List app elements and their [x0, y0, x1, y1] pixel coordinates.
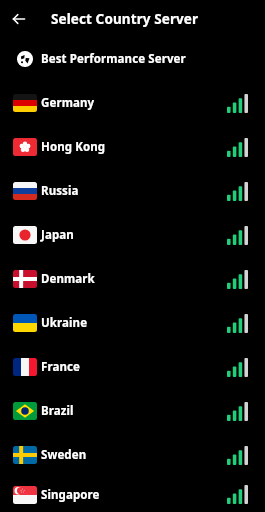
staticText: Best Performance Server — [41, 51, 227, 67]
staticText: Hong Kong — [41, 139, 227, 155]
staticText: Japan — [41, 227, 227, 243]
button[interactable]: Brazil — [0, 389, 265, 433]
staticText: France — [41, 359, 227, 375]
staticText: Denmark — [41, 271, 227, 287]
staticText: Select Country Server — [51, 10, 199, 28]
button[interactable]: Denmark — [0, 257, 265, 301]
staticText: Sweden — [41, 447, 227, 463]
staticText: Germany — [41, 95, 227, 111]
button[interactable]: Sweden — [0, 433, 265, 477]
staticText: Brazil — [41, 403, 227, 419]
staticText: Russia — [41, 183, 227, 199]
staticText: Singapore — [41, 487, 227, 503]
button[interactable]: Hong Kong — [0, 125, 265, 169]
staticText: Ukraine — [41, 315, 227, 331]
button[interactable]: Best Performance Server — [0, 37, 265, 81]
button[interactable]: Back — [7, 7, 31, 31]
button[interactable]: Germany — [0, 81, 265, 125]
button[interactable]: France — [0, 345, 265, 389]
button[interactable]: Japan — [0, 213, 265, 257]
button[interactable]: Russia — [0, 169, 265, 213]
button[interactable]: Singapore — [0, 477, 265, 512]
button[interactable]: Ukraine — [0, 301, 265, 345]
